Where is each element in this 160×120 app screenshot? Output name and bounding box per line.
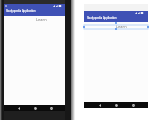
staticText: Studyopedia Application: [87, 16, 117, 20]
button[interactable]: Home: [110, 102, 123, 108]
button[interactable]: Home: [29, 105, 42, 111]
button[interactable]: Back: [12, 105, 25, 111]
staticText: Learn: [36, 17, 47, 22]
button[interactable]: Recent apps: [127, 102, 140, 108]
button[interactable]: Back: [93, 102, 106, 108]
button[interactable]: Learn text view selection: [84, 25, 148, 29]
staticText: Studyopedia Application: [6, 9, 36, 13]
button[interactable]: Recent apps: [45, 105, 58, 111]
staticText: Learn: [116, 24, 127, 29]
